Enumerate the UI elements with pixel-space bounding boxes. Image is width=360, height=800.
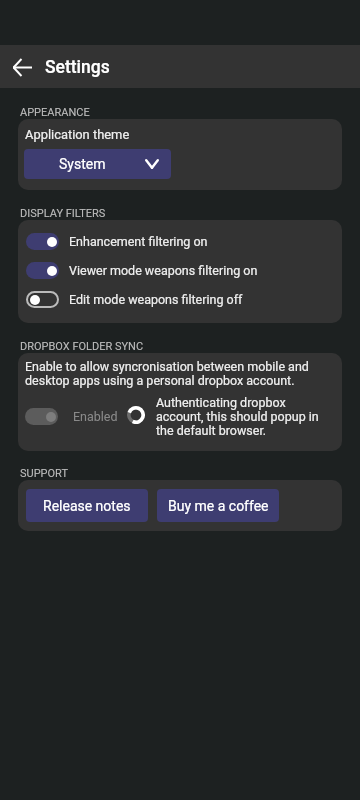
button[interactable]: Buy me a coffee (157, 489, 279, 522)
button[interactable]: Release notes (26, 489, 148, 522)
staticText: Release notes (43, 498, 131, 514)
staticText: DROPBOX FOLDER SYNC (20, 340, 144, 353)
button[interactable]: System (24, 149, 171, 179)
staticText: Authenticating dropbox account, this sho… (156, 395, 334, 438)
button[interactable]: Back (4, 49, 40, 85)
staticText: SUPPORT (20, 467, 69, 480)
staticText: Enabled (73, 409, 118, 424)
staticText: Enable to allow syncronisation between m… (25, 359, 334, 388)
staticText: APPEARANCE (20, 106, 90, 119)
staticText: DISPLAY FILTERS (20, 207, 106, 220)
staticText: Buy me a coffee (168, 498, 269, 514)
button[interactable]: Edit mode weapons filtering off (18, 285, 342, 314)
staticText: Application theme (25, 127, 130, 142)
button[interactable]: Enhancement filtering on (18, 227, 342, 256)
staticText: Enhancement filtering on (69, 234, 208, 249)
staticText: Viewer mode weapons filtering on (69, 263, 258, 278)
staticText: Settings (45, 57, 110, 78)
staticText: Edit mode weapons filtering off (69, 292, 243, 307)
staticText: System (59, 156, 106, 172)
button[interactable]: Viewer mode weapons filtering on (18, 256, 342, 285)
